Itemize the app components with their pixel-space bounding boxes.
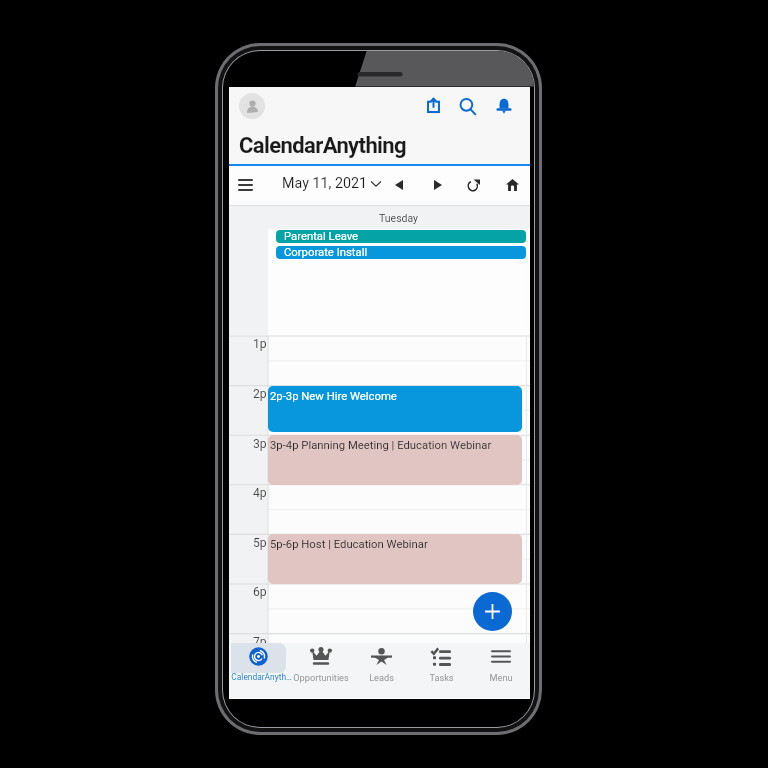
button[interactable]: 3p-4p Planning Meeting | Education Webin… [268, 435, 522, 485]
button[interactable]: Previous [383, 169, 415, 201]
staticText: 6p [253, 585, 267, 599]
staticText: May 11, 2021 [282, 175, 368, 192]
staticText: 7p [253, 635, 267, 649]
button[interactable]: Corporate Install [276, 246, 526, 259]
staticText: 5p-6p Host | Education Webinar [270, 538, 428, 551]
button[interactable]: Menu [229, 169, 261, 201]
button[interactable]: 5p-6p Host | Education Webinar [268, 534, 522, 584]
staticText: 3p [253, 437, 267, 451]
staticText: 1p [253, 337, 267, 351]
button[interactable]: Next [422, 169, 454, 201]
button[interactable]: Parental Leave [276, 230, 526, 243]
staticText: Leads [369, 672, 394, 683]
button[interactable]: Notifications [490, 92, 518, 120]
staticText: CalendarAnyth… [231, 672, 286, 682]
staticText: 2p [253, 387, 267, 401]
staticText: CalendarAnything [239, 133, 407, 159]
button[interactable]: Share [419, 91, 447, 119]
button[interactable]: Leads [351, 643, 411, 698]
button[interactable]: 2p-3p New Hire Welcome [268, 386, 522, 432]
button[interactable]: Add event [473, 592, 512, 631]
staticText: Menu [489, 672, 513, 683]
button[interactable]: Profile [239, 93, 265, 119]
staticText: Tuesday [379, 212, 419, 224]
button[interactable]: CalendarAnyth… [231, 643, 286, 698]
staticText: Tasks [429, 672, 454, 683]
button[interactable]: May 11, 2021 [282, 172, 381, 194]
staticText: Corporate Install [284, 246, 368, 259]
button[interactable]: Tasks [411, 643, 471, 698]
staticText: Opportunities [293, 672, 349, 683]
staticText: 2p-3p New Hire Welcome [270, 390, 397, 403]
button[interactable]: Refresh [458, 169, 490, 201]
staticText: Parental Leave [284, 230, 359, 243]
staticText: 3p-4p Planning Meeting | Education Webin… [270, 439, 492, 452]
button[interactable]: Search [454, 92, 482, 120]
button[interactable]: Home [496, 169, 528, 201]
staticText: 4p [253, 486, 267, 500]
button[interactable]: Opportunities [291, 643, 351, 698]
button[interactable]: Menu [471, 643, 531, 698]
staticText: 5p [253, 536, 267, 550]
